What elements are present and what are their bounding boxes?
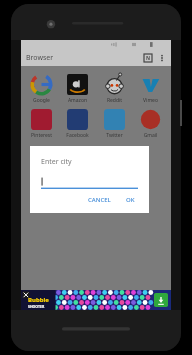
button[interactable]: Bubble Shooter advertisement [21,290,171,310]
staticText: Browser [26,53,54,63]
staticText: Amazon [61,97,94,104]
button[interactable]: More options [158,51,166,65]
staticText: Enter city [41,157,72,167]
staticText: Vimeo [134,97,167,104]
staticText: Google [25,97,58,104]
staticText: N [146,55,151,62]
staticText: Reddit [98,97,131,104]
button[interactable]: Facebook [61,109,94,139]
button[interactable]: Pinterest [25,109,58,139]
staticText: Twitter [98,132,131,139]
staticText: SHOOTER [28,304,45,309]
staticText: Bubble [28,296,49,304]
button[interactable]: Google [25,74,58,104]
button[interactable]: Night mode [143,53,153,63]
staticText: Facebook [61,132,94,139]
staticText: Pinterest [25,132,58,139]
button[interactable]: CANCEL [85,194,114,206]
button[interactable]: Amazon [61,74,94,104]
button[interactable]: Vimeo [134,74,167,104]
button[interactable]: Reddit [98,74,131,104]
button[interactable]: Twitter [98,109,131,139]
staticText: CANCEL [88,196,111,204]
staticText: OK [126,196,135,204]
button[interactable]: OK [123,194,138,206]
button[interactable]: Gmail [134,109,167,139]
staticText: Gmail [134,132,167,139]
button[interactable] [41,176,138,189]
